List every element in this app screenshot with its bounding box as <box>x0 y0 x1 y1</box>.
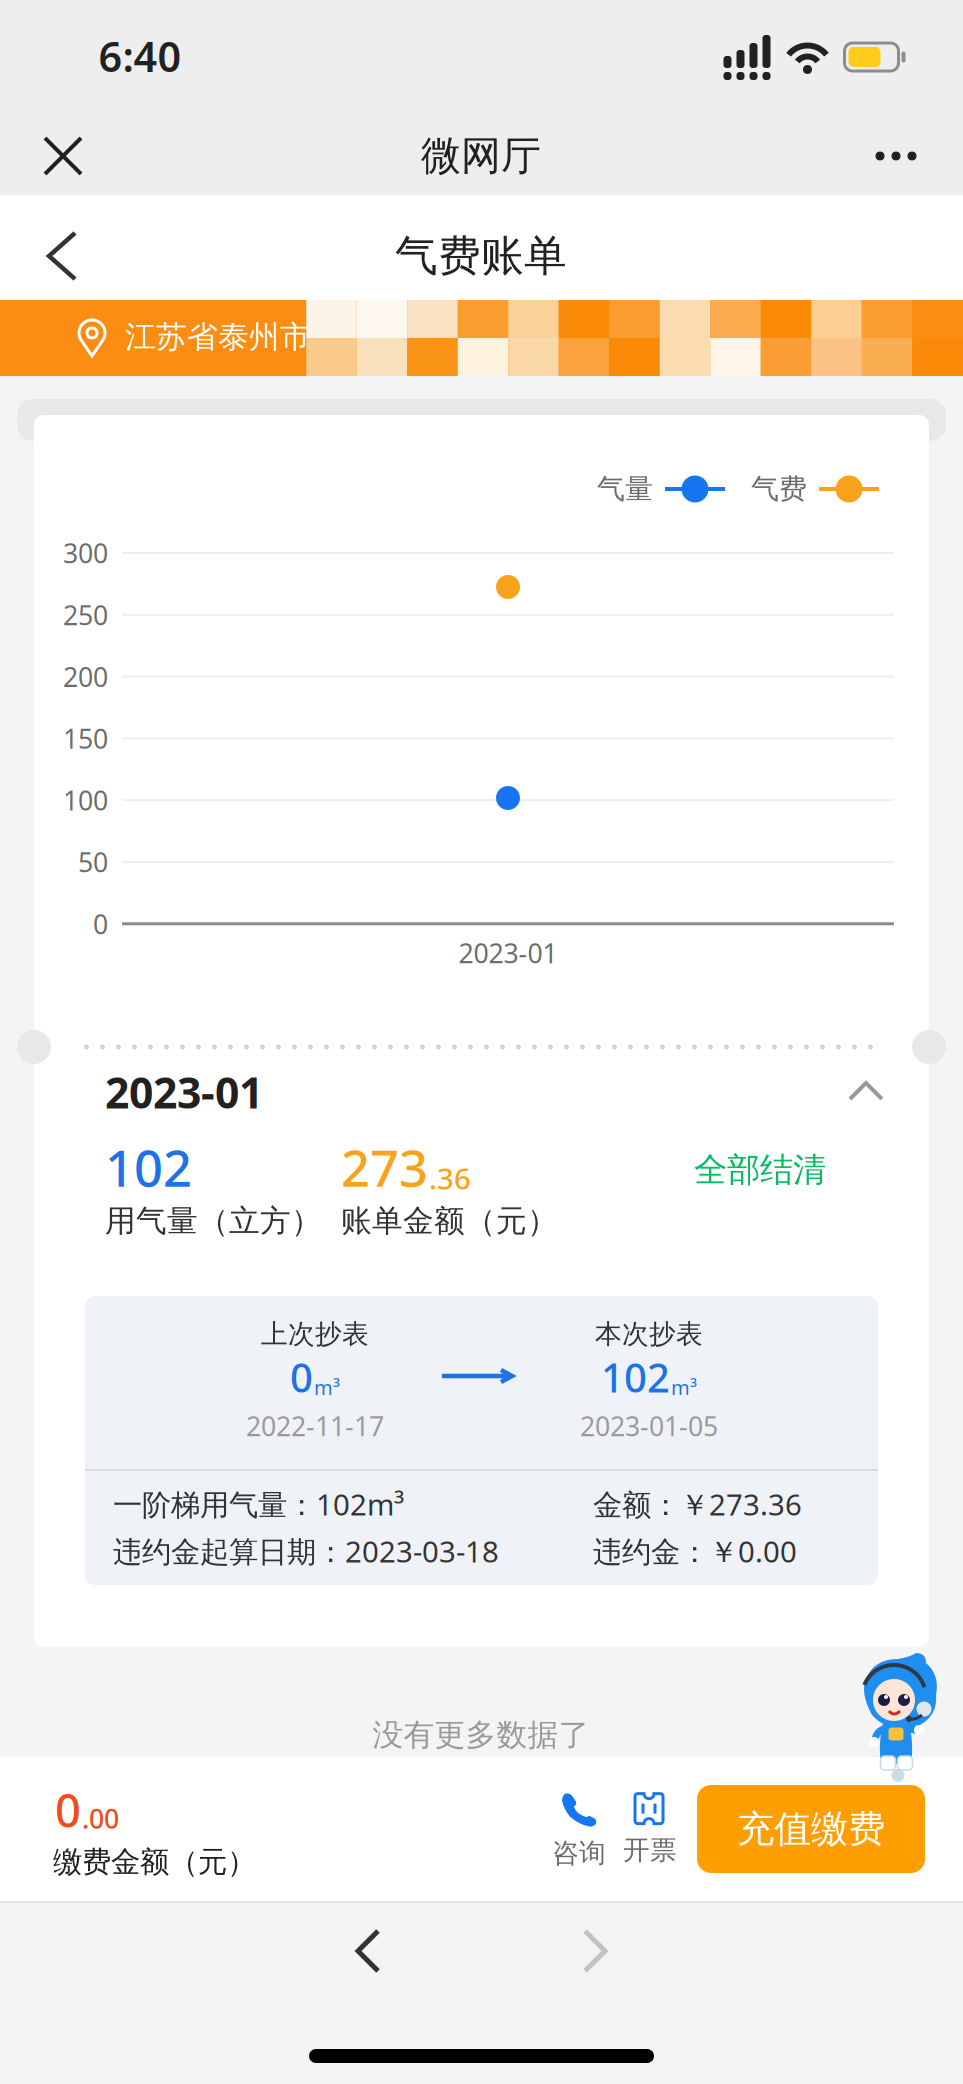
staticText: 2022-11-17 <box>246 1408 384 1444</box>
staticText: 江苏省泰州市 <box>125 318 311 356</box>
staticText: 0 <box>290 1350 313 1403</box>
staticText: 用气量（立方） <box>105 1202 322 1240</box>
button[interactable]: 江苏省泰州市 <box>0 300 963 376</box>
staticText: .00 <box>82 1801 119 1836</box>
staticText: 上次抄表 <box>261 1318 369 1350</box>
staticText: 没有更多数据了 <box>372 1716 589 1754</box>
staticText: 咨询 <box>552 1837 606 1869</box>
staticText: 气量 <box>597 472 653 506</box>
staticText: 250 <box>63 597 108 632</box>
button[interactable] <box>42 231 82 281</box>
staticText: 300 <box>63 535 108 571</box>
button[interactable] <box>346 1926 390 1976</box>
button[interactable]: 开票 <box>623 1794 677 1866</box>
staticText: 账单金额（元） <box>341 1202 558 1240</box>
staticText: 2023-01 <box>458 935 557 971</box>
staticText: 金额：￥273.36 <box>593 1484 802 1523</box>
staticText: 违约金：￥0.00 <box>593 1531 797 1570</box>
staticText: m³ <box>314 1374 340 1401</box>
button[interactable]: 充值缴费 <box>697 1785 925 1873</box>
staticText: 200 <box>63 659 108 694</box>
staticText: 150 <box>63 721 108 756</box>
staticText: 违约金起算日期：2023-03-18 <box>113 1531 499 1570</box>
staticText: 气费账单 <box>395 230 567 282</box>
staticText: 102 <box>601 1350 670 1403</box>
staticText: 缴费金额（元） <box>53 1844 256 1880</box>
staticText: 273 <box>341 1133 428 1201</box>
staticText: 100 <box>63 782 108 818</box>
staticText: 2023-01 <box>105 1064 263 1120</box>
staticText: 102 <box>105 1133 192 1201</box>
staticText: 充值缴费 <box>737 1806 885 1852</box>
staticText: 2023-01-05 <box>580 1408 718 1444</box>
staticText: m³ <box>671 1374 697 1401</box>
button[interactable] <box>573 1926 617 1976</box>
staticText: 气费 <box>751 472 807 506</box>
button[interactable] <box>41 134 85 178</box>
button[interactable] <box>844 1076 888 1106</box>
staticText: 0 <box>93 906 108 941</box>
staticText: 一阶梯用气量：102m³ <box>113 1484 404 1523</box>
staticText: 本次抄表 <box>595 1318 703 1350</box>
staticText: 全部结清 <box>694 1149 826 1190</box>
staticText: 6:40 <box>98 29 181 83</box>
staticText: 50 <box>78 844 108 880</box>
staticText: 微网厅 <box>421 131 541 180</box>
button[interactable] <box>875 151 916 160</box>
staticText: 开票 <box>623 1834 677 1866</box>
staticText: 0 <box>55 1780 81 1840</box>
staticText: .36 <box>429 1159 471 1198</box>
button[interactable]: 咨询 <box>552 1791 606 1869</box>
